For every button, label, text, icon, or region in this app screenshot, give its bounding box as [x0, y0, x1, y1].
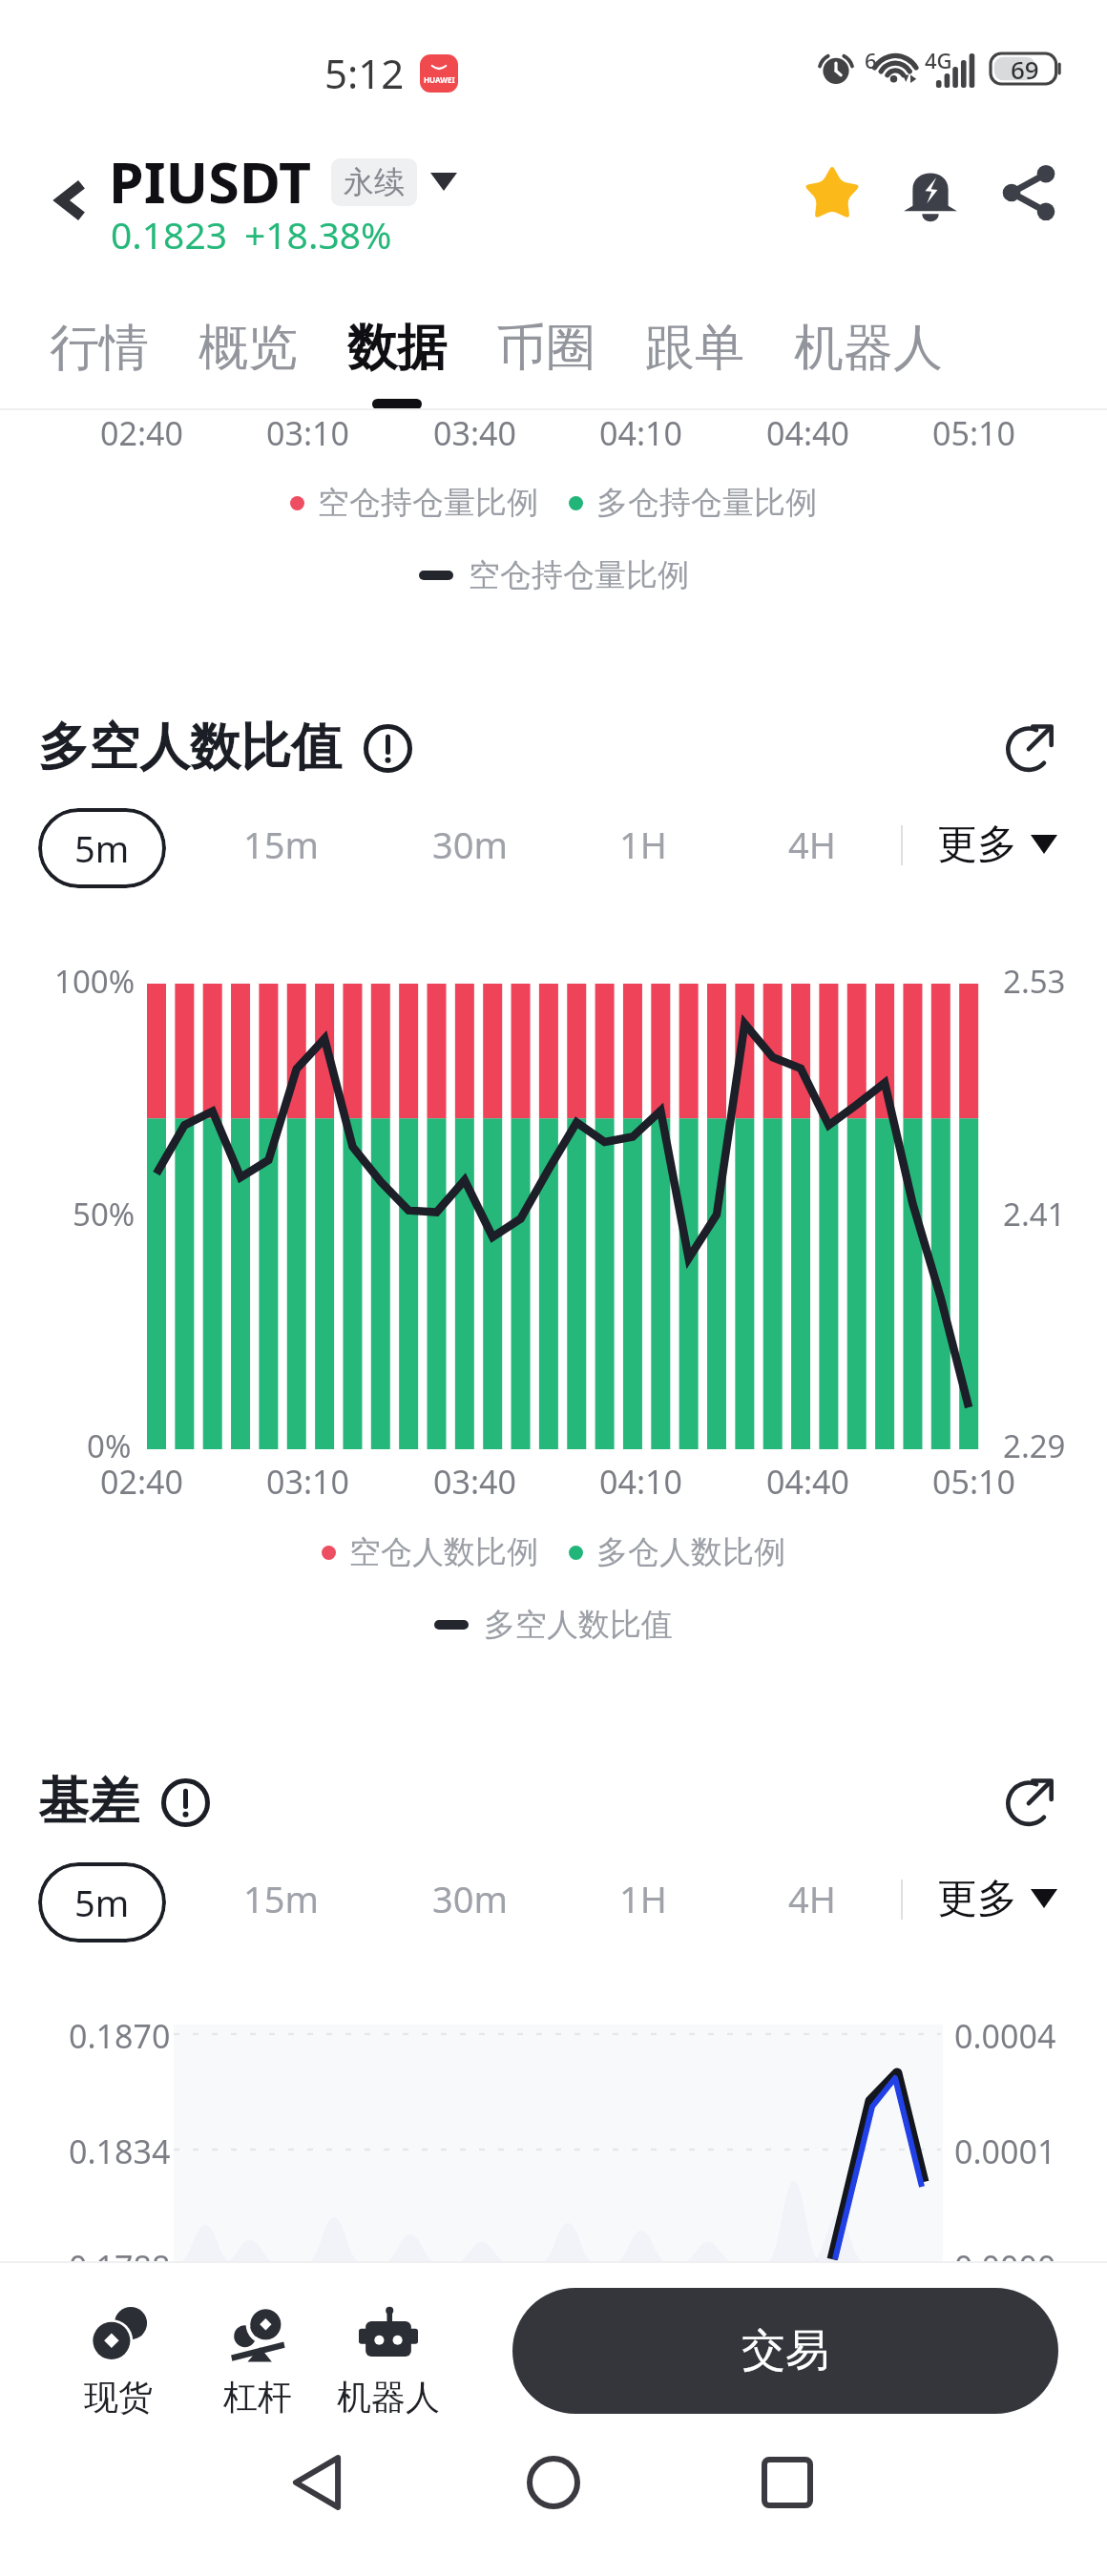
- button[interactable]: 1H: [610, 1860, 677, 1937]
- staticText: 0.0001: [954, 2129, 1056, 2173]
- staticText: 02:40: [100, 411, 183, 455]
- staticText: 0.1834: [69, 2129, 171, 2173]
- staticText: PIUSDT: [109, 143, 312, 219]
- button[interactable]: Info: [361, 721, 414, 775]
- staticText: 100%: [54, 960, 136, 1003]
- staticText: 03:10: [266, 1460, 349, 1504]
- button[interactable]: Price alert: [888, 151, 972, 235]
- staticText: 0.1870: [69, 2014, 171, 2058]
- staticText: 5:12: [324, 46, 405, 100]
- staticText: 03:40: [433, 411, 516, 455]
- button[interactable]: 概览: [191, 317, 305, 380]
- staticText: 4H: [788, 1874, 836, 1923]
- button[interactable]: 币圈: [489, 317, 603, 380]
- staticText: 0%: [87, 1424, 132, 1467]
- staticText: 多空人数比值: [38, 716, 342, 779]
- button[interactable]: 机器人: [324, 2303, 453, 2419]
- staticText: 15m: [243, 1874, 320, 1923]
- button[interactable]: Share: [987, 151, 1071, 235]
- staticText: 03:40: [433, 1460, 516, 1504]
- staticText: 4H: [788, 820, 836, 869]
- staticText: 5m: [74, 823, 130, 873]
- button[interactable]: 30m: [423, 806, 518, 883]
- staticText: 15m: [243, 820, 320, 869]
- staticText: 空仓持仓量比例: [469, 555, 689, 595]
- staticText: 机器人: [337, 2376, 440, 2419]
- button[interactable]: 1H: [610, 806, 677, 883]
- button[interactable]: 4H: [779, 806, 846, 883]
- staticText: 多仓人数比例: [596, 1532, 785, 1572]
- staticText: 04:10: [599, 411, 682, 455]
- staticText: 概览: [198, 317, 298, 380]
- staticText: 空仓持仓量比例: [318, 483, 538, 523]
- staticText: 行情: [50, 317, 149, 380]
- button[interactable]: Switch contract: [430, 173, 457, 191]
- button[interactable]: 交易: [512, 2288, 1058, 2414]
- button[interactable]: Home: [501, 2430, 606, 2535]
- staticText: 04:10: [599, 1460, 682, 1504]
- staticText: 30m: [432, 1874, 509, 1923]
- staticText: 跟单: [645, 317, 744, 380]
- staticText: 0.1788: [69, 2245, 171, 2289]
- staticText: 04:40: [766, 411, 849, 455]
- button[interactable]: 15m: [234, 1860, 329, 1937]
- button[interactable]: 5m: [38, 808, 166, 888]
- button[interactable]: 杠杆: [193, 2303, 323, 2419]
- staticText: 5m: [74, 1878, 130, 1927]
- staticText: 0.0000: [954, 2245, 1056, 2289]
- staticText: 更多: [937, 820, 1017, 870]
- staticText: 03:10: [266, 411, 349, 455]
- button[interactable]: 4H: [779, 1860, 846, 1937]
- button[interactable]: 数据: [340, 317, 454, 409]
- button[interactable]: 更多: [933, 1860, 1061, 1937]
- staticText: 2.41: [1003, 1193, 1066, 1236]
- staticText: 1H: [619, 820, 667, 869]
- staticText: 05:10: [932, 1460, 1015, 1504]
- button[interactable]: 机器人: [786, 317, 950, 380]
- button[interactable]: 永续: [331, 158, 417, 206]
- staticText: 0.0004: [954, 2014, 1056, 2058]
- staticText: 02:40: [100, 1460, 183, 1504]
- button[interactable]: Back: [264, 2430, 369, 2535]
- staticText: 05:10: [932, 411, 1015, 455]
- button[interactable]: 行情: [42, 317, 157, 380]
- staticText: 0.1823: [111, 209, 227, 260]
- staticText: 50%: [73, 1193, 136, 1236]
- button[interactable]: Expand chart: [995, 712, 1064, 780]
- staticText: +18.38%: [244, 209, 392, 260]
- staticText: 04:40: [766, 1460, 849, 1504]
- staticText: 现货: [84, 2376, 153, 2419]
- button[interactable]: Recent apps: [735, 2430, 840, 2535]
- staticText: 永续: [344, 163, 405, 201]
- staticText: 币圈: [496, 317, 595, 380]
- button[interactable]: 5m: [38, 1862, 166, 1942]
- button[interactable]: Favorite: [790, 151, 874, 235]
- staticText: 1H: [619, 1874, 667, 1923]
- staticText: 多空人数比值: [484, 1605, 673, 1645]
- staticText: 交易: [741, 2323, 829, 2379]
- button[interactable]: 跟单: [637, 317, 752, 380]
- staticText: 机器人: [794, 317, 943, 380]
- staticText: 更多: [937, 1874, 1017, 1924]
- staticText: 69: [1011, 52, 1039, 86]
- button[interactable]: 更多: [933, 806, 1061, 883]
- button[interactable]: 30m: [423, 1860, 518, 1937]
- staticText: 30m: [432, 820, 509, 869]
- staticText: 杠杆: [223, 2376, 292, 2419]
- button[interactable]: 现货: [53, 2303, 183, 2419]
- staticText: 2.53: [1003, 960, 1066, 1003]
- staticText: 多仓持仓量比例: [596, 483, 817, 523]
- staticText: HUAWEI: [424, 74, 455, 85]
- staticText: 基差: [38, 1770, 139, 1834]
- staticText: 空仓人数比例: [349, 1532, 538, 1572]
- staticText: 2.29: [1003, 1424, 1066, 1467]
- staticText: 4G: [925, 46, 952, 74]
- staticText: 数据: [347, 317, 447, 380]
- button[interactable]: 15m: [234, 806, 329, 883]
- button[interactable]: Expand chart: [995, 1766, 1064, 1835]
- staticText: 6: [865, 46, 877, 74]
- button[interactable]: Back: [29, 159, 111, 241]
- button[interactable]: Info: [158, 1776, 212, 1829]
